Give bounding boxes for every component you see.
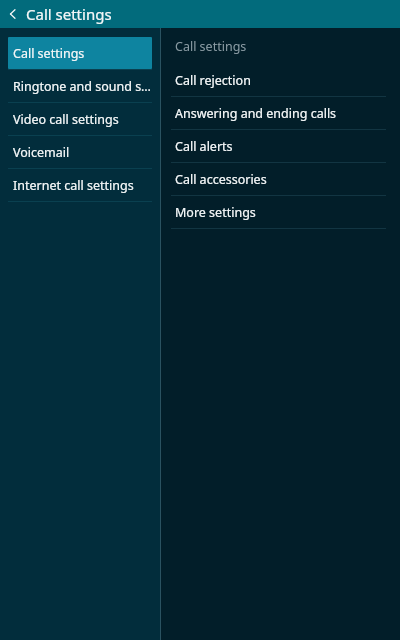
staticText: Voicemail <box>13 144 70 161</box>
staticText: Call settings <box>26 4 112 24</box>
staticText: Call rejection <box>175 72 251 89</box>
button[interactable]: Ringtone and sound setti.. <box>0 70 160 102</box>
button[interactable]: More settings <box>161 196 400 228</box>
button[interactable]: Internet call settings <box>0 169 160 201</box>
button[interactable]: Voicemail <box>0 136 160 168</box>
button[interactable]: Call accessories <box>161 163 400 195</box>
button[interactable]: Video call settings <box>0 103 160 135</box>
staticText: Call settings <box>175 38 247 55</box>
button[interactable]: Back <box>0 0 26 28</box>
button[interactable]: Answering and ending calls <box>161 97 400 129</box>
button[interactable]: Call settings <box>8 37 152 69</box>
staticText: Video call settings <box>13 111 119 128</box>
staticText: Ringtone and sound setti.. <box>13 78 154 95</box>
staticText: Internet call settings <box>13 177 134 194</box>
staticText: Call accessories <box>175 171 267 188</box>
button[interactable]: Call rejection <box>161 64 400 96</box>
staticText: Call settings <box>13 45 85 62</box>
button[interactable]: Call alerts <box>161 130 400 162</box>
staticText: More settings <box>175 204 256 221</box>
staticText: Answering and ending calls <box>175 105 337 122</box>
staticText: Call alerts <box>175 138 233 155</box>
